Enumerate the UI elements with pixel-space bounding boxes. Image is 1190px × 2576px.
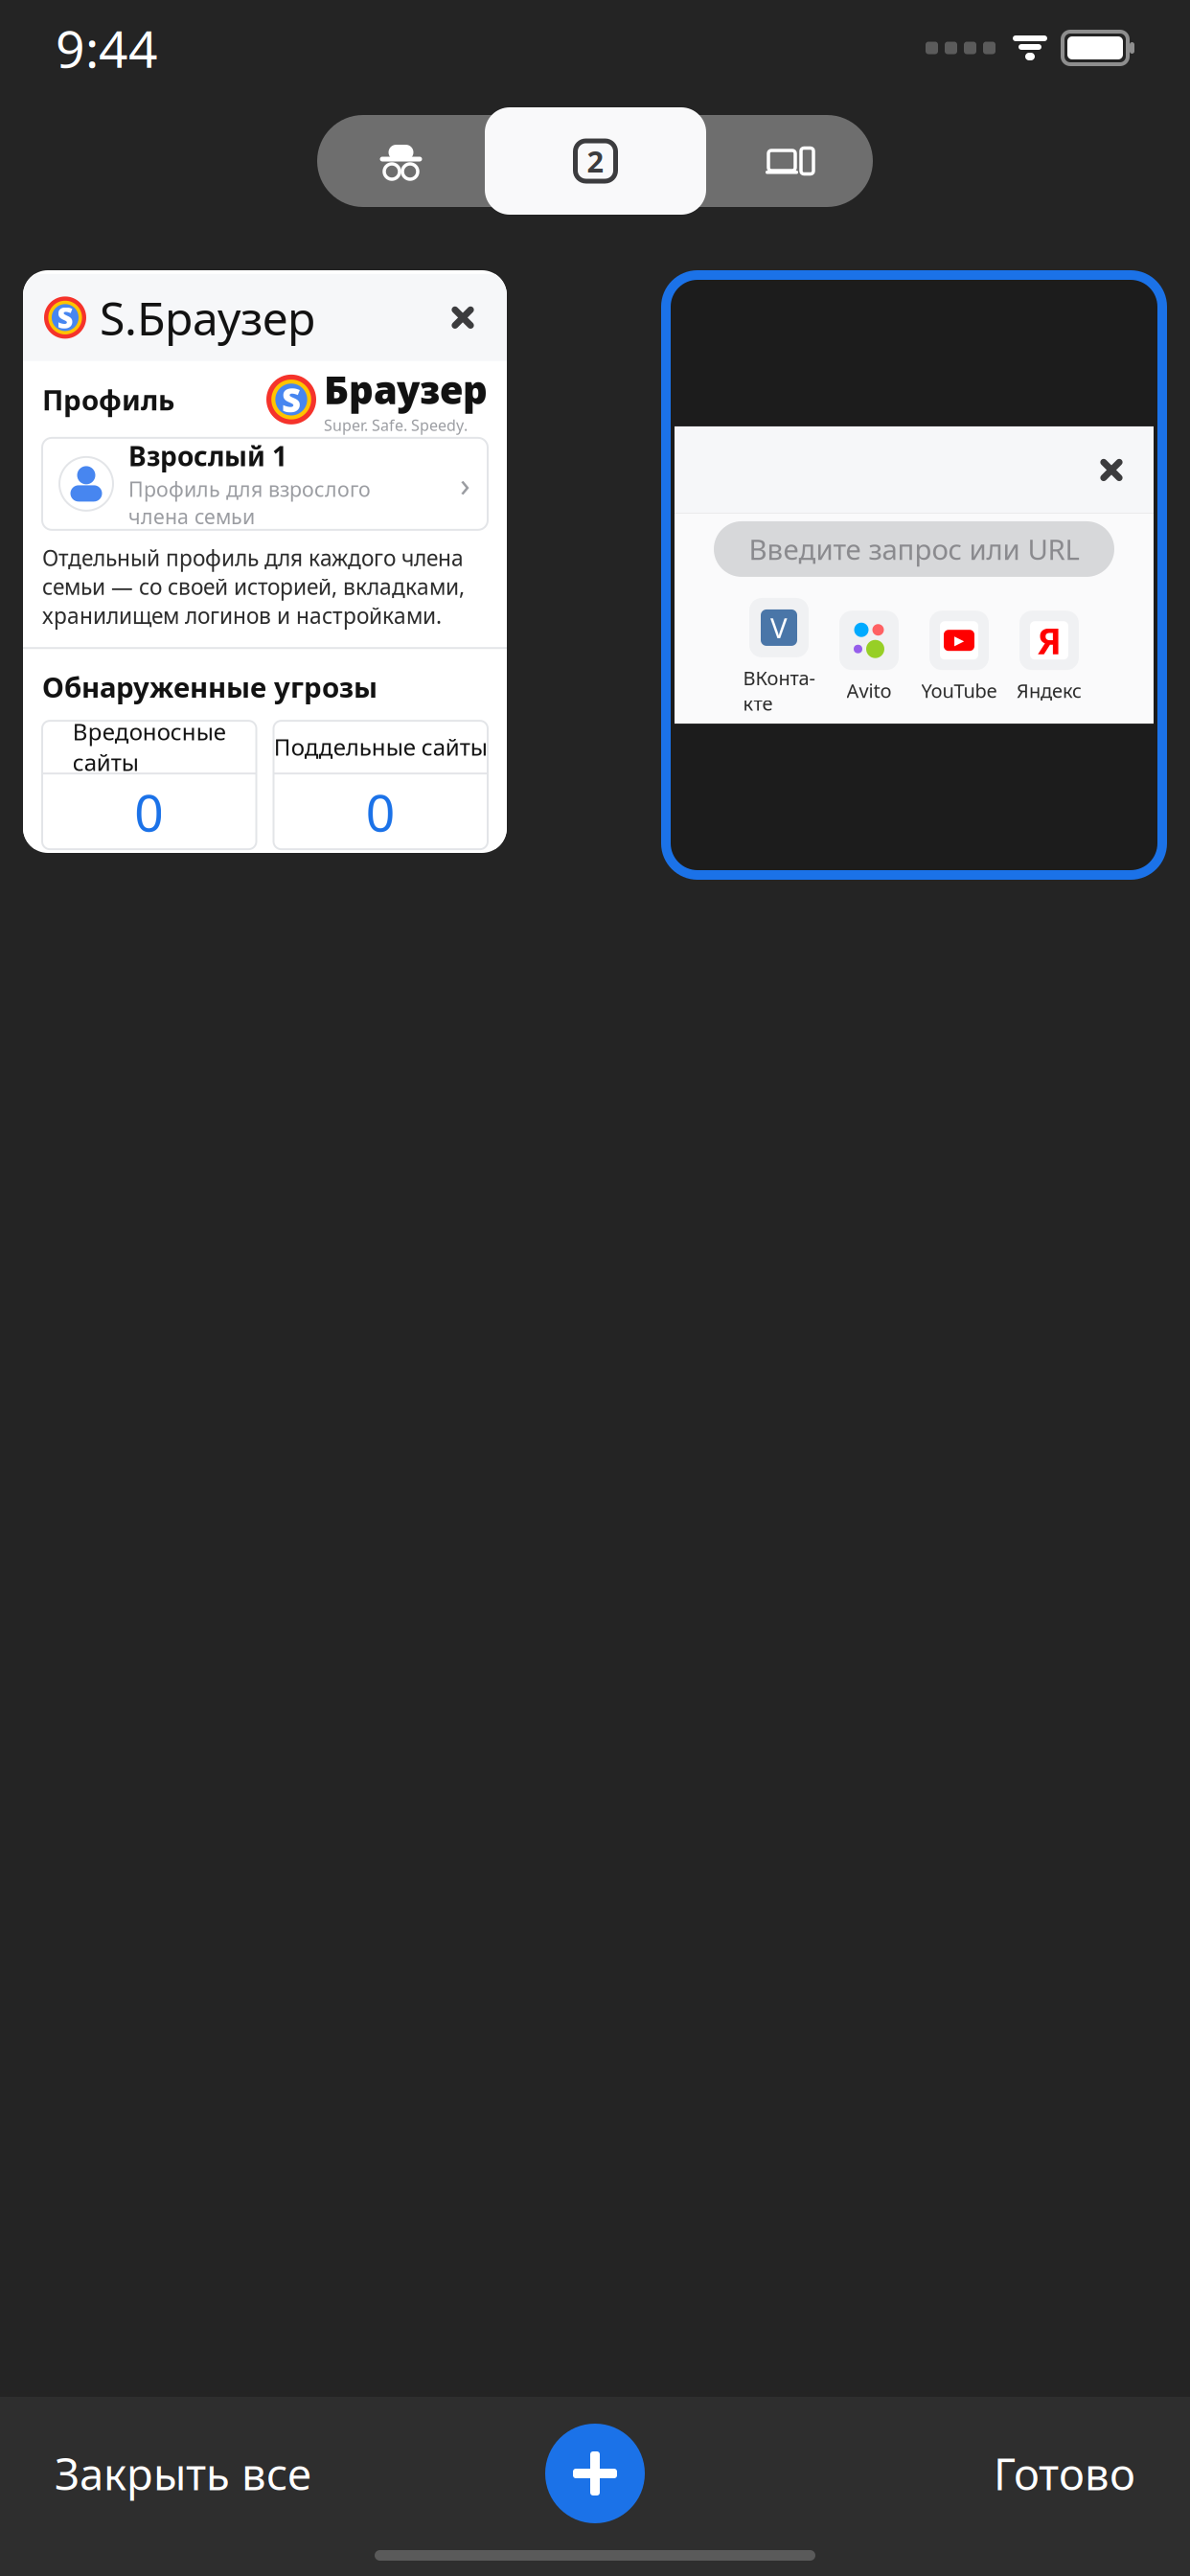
- staticText: Я: [1037, 617, 1061, 664]
- button[interactable]: New tab: [541, 2420, 649, 2527]
- button[interactable]: Закрыть все: [34, 2429, 332, 2518]
- staticText: S: [282, 377, 301, 422]
- button[interactable]: Private browsing: [317, 115, 485, 207]
- staticText: 2: [587, 141, 604, 180]
- staticText: S: [57, 299, 73, 336]
- button[interactable]: Взрослый 1: [42, 438, 488, 530]
- staticText: ▶: [954, 633, 964, 648]
- button[interactable]: Готово: [973, 2429, 1156, 2518]
- staticText: Вредоносные сайты: [73, 716, 226, 777]
- staticText: 9:44: [56, 14, 158, 82]
- staticText: Яндекс: [1017, 678, 1082, 703]
- staticText: ВКонтакте: [743, 665, 815, 716]
- staticText: 0: [134, 778, 164, 846]
- staticText: Профиль для взрослого члена семьи: [128, 475, 371, 530]
- staticText: S.Браузер: [100, 287, 315, 348]
- staticText: ›: [460, 462, 470, 506]
- staticText: Профиль: [42, 381, 174, 418]
- staticText: Отдельный профиль для каждого члена семь…: [42, 543, 465, 630]
- staticText: Браузер: [324, 364, 488, 415]
- staticText: Обнаруженные угрозы: [42, 668, 378, 706]
- staticText: YouTube: [921, 678, 997, 703]
- staticText: Super. Safe. Speedy.: [324, 415, 468, 435]
- staticText: Готово: [994, 2445, 1135, 2502]
- button[interactable]: Close tab: [1088, 447, 1134, 493]
- button[interactable]: Other devices: [706, 115, 873, 207]
- button[interactable]: Введите запрос или URL: [714, 521, 1114, 577]
- staticText: Поддельные сайты: [274, 731, 487, 762]
- staticText: Взрослый 1: [128, 438, 287, 474]
- staticText: 0: [366, 778, 396, 846]
- staticText: Введите запрос или URL: [749, 530, 1079, 568]
- staticText: Avito: [847, 678, 892, 703]
- button[interactable]: Open tabs, 2: [485, 107, 706, 215]
- button[interactable]: Close tab: [440, 295, 486, 341]
- staticText: V: [770, 609, 788, 646]
- staticText: Закрыть все: [55, 2445, 311, 2502]
